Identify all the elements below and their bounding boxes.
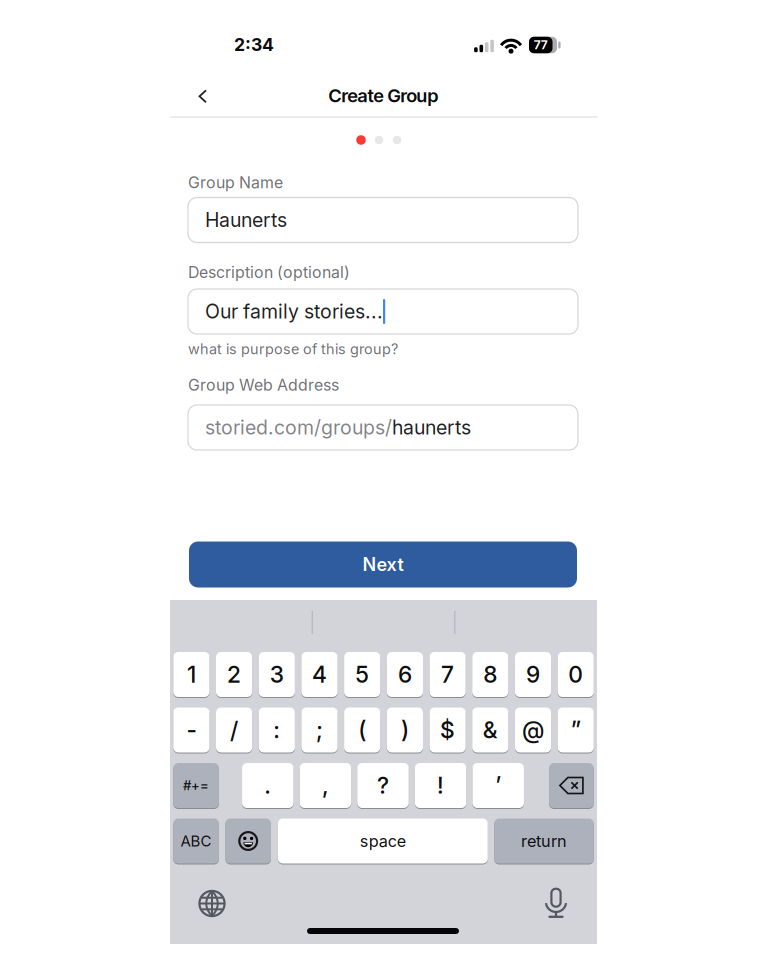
button[interactable]: - <box>173 707 209 752</box>
staticText: #+= <box>183 778 209 793</box>
button[interactable]: & <box>472 707 508 752</box>
button[interactable]: Back <box>188 81 218 111</box>
staticText: haunerts <box>392 416 471 439</box>
button[interactable]: #+= <box>173 763 219 808</box>
button[interactable]: Dictation <box>541 883 571 923</box>
button[interactable]: : <box>259 707 295 752</box>
staticText: what is purpose of this group? <box>188 340 398 358</box>
button[interactable]: ’ <box>472 763 524 808</box>
staticText: space <box>360 831 406 851</box>
staticText: , <box>322 772 329 799</box>
button[interactable]: Haunerts <box>188 197 578 242</box>
button[interactable]: ” <box>558 707 594 752</box>
button[interactable]: space <box>278 818 488 863</box>
staticText: Create Group <box>328 84 438 107</box>
button[interactable]: / <box>216 707 252 752</box>
button[interactable]: 5 <box>344 652 380 697</box>
staticText: 4 <box>312 661 327 688</box>
staticText: Haunerts <box>205 208 287 232</box>
staticText: 2:34 <box>234 34 274 55</box>
staticText: : <box>273 716 280 744</box>
button[interactable]: ) <box>387 707 423 752</box>
button[interactable]: 0 <box>558 652 594 697</box>
button[interactable]: ? <box>357 763 409 808</box>
staticText: / <box>230 716 238 744</box>
button[interactable]: 4 <box>301 652 338 697</box>
staticText: ( <box>358 716 366 744</box>
staticText: @ <box>522 716 544 744</box>
button[interactable]: ! <box>415 763 466 808</box>
button[interactable]: Next keyboard <box>192 883 232 923</box>
button[interactable]: storied.com/groups/ <box>188 405 578 450</box>
staticText: 9 <box>526 661 540 688</box>
button[interactable]: 2 <box>216 652 252 697</box>
staticText: 0 <box>568 661 583 688</box>
button[interactable]: 8 <box>472 652 508 697</box>
staticText: 3 <box>270 661 284 688</box>
staticText: storied.com/groups/ <box>205 416 392 439</box>
button[interactable]: Our family stories... <box>188 289 578 334</box>
staticText: 6 <box>398 661 412 688</box>
button[interactable]: Emoji <box>225 818 271 863</box>
button[interactable]: ABC <box>173 818 219 863</box>
button[interactable]: 9 <box>515 652 551 697</box>
button[interactable]: ; <box>301 707 338 752</box>
staticText: return <box>521 831 567 851</box>
button[interactable]: . <box>242 763 294 808</box>
staticText: ” <box>571 716 581 744</box>
button[interactable]: , <box>300 763 351 808</box>
staticText: ) <box>401 716 409 744</box>
staticText: Group Web Address <box>188 375 339 394</box>
button[interactable]: Delete <box>549 763 594 808</box>
staticText: 77 <box>534 38 548 52</box>
button[interactable]: 7 <box>429 652 466 697</box>
staticText: $ <box>440 716 455 744</box>
button[interactable]: 3 <box>259 652 295 697</box>
staticText: 7 <box>441 661 454 688</box>
staticText: ABC <box>181 832 212 850</box>
staticText: Next <box>362 554 403 575</box>
button[interactable]: 6 <box>387 652 423 697</box>
staticText: ! <box>437 772 444 799</box>
button[interactable]: ( <box>344 707 380 752</box>
staticText: Group Name <box>188 173 283 192</box>
staticText: & <box>483 716 498 744</box>
button[interactable]: 1 <box>173 652 209 697</box>
staticText: 5 <box>355 661 369 688</box>
staticText: 2 <box>227 661 241 688</box>
staticText: - <box>186 716 196 744</box>
button[interactable]: $ <box>429 707 466 752</box>
staticText: . <box>264 772 271 799</box>
button[interactable]: return <box>494 818 594 863</box>
staticText: Description (optional) <box>188 263 350 282</box>
button[interactable]: Next <box>189 541 577 587</box>
button[interactable]: @ <box>515 707 551 752</box>
staticText: ; <box>316 716 323 744</box>
staticText: ’ <box>495 772 501 799</box>
staticText: Our family stories... <box>205 300 383 323</box>
staticText: 1 <box>187 661 196 688</box>
staticText: ? <box>377 772 389 799</box>
staticText: 8 <box>483 661 497 688</box>
